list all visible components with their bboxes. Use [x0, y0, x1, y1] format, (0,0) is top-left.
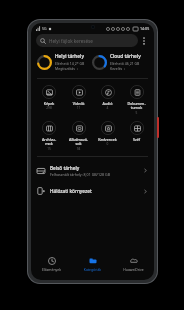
staticText: Előzmények [31, 267, 72, 272]
staticText: Audió [93, 101, 122, 106]
staticText: Cloud tárhely [110, 53, 141, 60]
staticText: Kezelés › [110, 66, 126, 71]
button[interactable]: Kategóriák [72, 256, 113, 273]
staticText: Dokumen- tumok [122, 101, 151, 111]
staticText: Képek [34, 101, 64, 106]
staticText: Elérhető 46,21 GB [110, 61, 140, 66]
staticText: Kedvencek [93, 137, 122, 142]
staticText: Hálózati környezet [50, 188, 143, 194]
button[interactable]: Helyi fájlok keresése [36, 34, 138, 47]
staticText: 0 [93, 142, 122, 146]
staticText: Széf [122, 137, 151, 142]
staticText: Helyi tárhely [55, 53, 84, 60]
button[interactable]: Kedvencek [93, 120, 122, 147]
staticText: 15 [34, 147, 64, 151]
staticText: Felhasznált tárhely: 8,01 GB/128 GB [50, 172, 110, 177]
staticText: 5G [42, 26, 47, 31]
button[interactable]: Archívu- mok [34, 120, 64, 152]
staticText: Helyi fájlok keresése [49, 38, 93, 44]
button[interactable]: Helyi tárhely [37, 51, 92, 73]
staticText: Alkalmazá- sok [64, 137, 93, 147]
button[interactable]: Videók [64, 84, 93, 111]
staticText: 94 [64, 147, 93, 151]
staticText: Videók [64, 101, 93, 106]
staticText: Belső tárhely [50, 165, 80, 171]
button[interactable]: Audió [93, 84, 122, 111]
staticText: Kategóriák [72, 267, 113, 272]
button[interactable]: Cloud tárhely [92, 51, 148, 73]
button[interactable]: Előzmények [31, 256, 72, 273]
staticText: Elérhető 14,2* GB [55, 61, 85, 66]
button[interactable]: Képek [34, 84, 64, 111]
staticText: 11 [64, 106, 93, 110]
button[interactable]: További lehetőségek [138, 34, 149, 47]
staticText: Archívu- mok [34, 137, 64, 147]
button[interactable]: HuaweiDrive [113, 256, 154, 273]
button[interactable]: Belső tárhely [31, 160, 154, 181]
button[interactable]: Széf [122, 120, 151, 143]
button[interactable]: Alkalmazá- sok [64, 120, 93, 152]
staticText: 4 [93, 106, 122, 110]
button[interactable]: Dokumen- tumok [122, 84, 151, 116]
staticText: 14:05 [140, 26, 150, 31]
staticText: HuaweiDrive [113, 267, 154, 272]
staticText: 5 [122, 111, 151, 115]
button[interactable]: Hálózati környezet [31, 181, 154, 201]
staticText: Megtisztítás › [55, 66, 78, 71]
staticText: 298 [34, 106, 64, 110]
